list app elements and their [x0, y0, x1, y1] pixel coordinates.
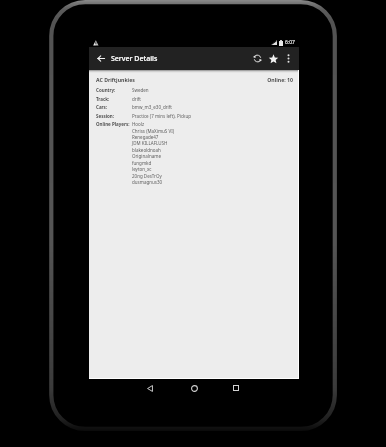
button[interactable]: Favorite — [265, 47, 281, 70]
staticText: Chriss (MaXimuS VI) — [132, 128, 175, 134]
staticText: Online Players: — [96, 121, 130, 127]
staticText: Country: — [96, 87, 116, 93]
staticText: Hoolz — [132, 121, 145, 127]
staticText: Server Details — [111, 54, 158, 64]
button[interactable]: Back — [139, 380, 161, 396]
staticText: leyton_xc — [132, 166, 152, 172]
staticText: dusmagnus30 — [132, 179, 163, 185]
button[interactable]: Home — [183, 380, 205, 396]
staticText: JDM KILLAFLUSH — [132, 140, 168, 146]
staticText: blakeoldnoah — [132, 147, 161, 153]
staticText: drift — [132, 96, 141, 102]
staticText: 6:07 — [285, 39, 295, 46]
staticText: Sweden — [132, 87, 149, 93]
staticText: Online: 10 — [89, 76, 293, 83]
button[interactable]: More options — [282, 47, 294, 70]
staticText: Practice (7 mins left), Pickup — [132, 113, 191, 119]
staticText: Track: — [96, 96, 110, 102]
staticText: Originalname — [132, 153, 161, 159]
staticText: bmw_m3_e30_drift — [132, 104, 172, 110]
staticText: Session: — [96, 113, 115, 119]
button[interactable]: Refresh — [249, 47, 265, 70]
staticText: Cars: — [96, 104, 108, 110]
staticText: AC Driftjunkies — [96, 76, 135, 83]
staticText: Renegade47 — [132, 134, 159, 140]
staticText: 20ng DesTrOy — [132, 173, 162, 179]
button[interactable]: Recent apps — [225, 380, 247, 396]
button[interactable]: Navigate up — [93, 47, 109, 70]
staticText: fungmkd — [132, 160, 152, 166]
